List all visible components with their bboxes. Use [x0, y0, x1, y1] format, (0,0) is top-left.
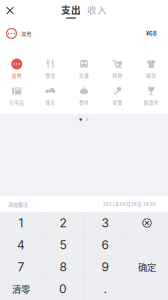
staticText: 支出 [61, 2, 81, 16]
staticText: 购物 [113, 72, 123, 79]
staticText: 餐饮 [45, 72, 55, 79]
button[interactable]: Close [0, 0, 20, 21]
button[interactable]: 其他 [0, 55, 34, 82]
staticText: 2 [59, 216, 66, 230]
button[interactable]: 交通 [67, 55, 101, 82]
staticText: 6 [101, 238, 108, 252]
button[interactable]: 7 [0, 256, 42, 278]
staticText: 服饰 [146, 72, 156, 79]
button[interactable]: 食材 [67, 82, 101, 109]
staticText: 5 [59, 238, 66, 252]
button[interactable]: Delete [126, 212, 168, 234]
staticText: 收入 [87, 2, 107, 16]
button[interactable]: 购物 [101, 55, 134, 82]
button[interactable]: 零食 [101, 82, 134, 109]
staticText: 清零 [12, 282, 30, 296]
button[interactable]: 2021年06月28日 14:30 [103, 196, 156, 211]
staticText: 零食 [113, 99, 123, 106]
button[interactable]: 日用品 [0, 82, 34, 109]
staticText: 烟酒茶 [144, 99, 159, 106]
staticText: 食材 [79, 99, 89, 106]
button[interactable]: 服饰 [134, 55, 168, 82]
staticText: 交通 [79, 72, 89, 79]
staticText: 其他 [21, 30, 31, 37]
button[interactable]: 清零 [0, 278, 42, 300]
button[interactable]: . [84, 278, 126, 300]
button[interactable]: 1 [0, 212, 42, 234]
staticText: 其他 [12, 72, 22, 79]
button[interactable]: 4 [0, 234, 42, 256]
button[interactable]: 0 [42, 278, 84, 300]
staticText: 9 [101, 260, 108, 274]
staticText: 0 [59, 282, 67, 296]
button[interactable]: 8 [42, 256, 84, 278]
button[interactable]: 确定 [126, 234, 168, 300]
button[interactable]: 娱乐 [34, 82, 67, 109]
button[interactable]: 9 [84, 256, 126, 278]
button[interactable]: 5 [42, 234, 84, 256]
button[interactable]: 餐饮 [34, 55, 67, 82]
button[interactable]: 收入 [84, 0, 110, 21]
button[interactable]: 支出 [58, 0, 84, 21]
button[interactable]: 3 [84, 212, 126, 234]
button[interactable]: 6 [84, 234, 126, 256]
staticText: 添加备注 [8, 200, 28, 208]
staticText: 娱乐 [45, 99, 55, 106]
button[interactable]: 添加备注 [8, 196, 28, 211]
staticText: 日用品 [9, 99, 24, 106]
staticText: 8 [59, 260, 66, 274]
staticText: 7 [17, 260, 24, 274]
staticText: 3 [101, 216, 108, 230]
staticText: 4 [17, 238, 25, 252]
staticText: 2021年06月28日 14:30 [103, 201, 156, 207]
staticText: . [103, 282, 106, 296]
staticText: ¥68 [146, 30, 157, 37]
staticText: 1 [18, 216, 23, 230]
button[interactable]: 烟酒茶 [134, 82, 168, 109]
staticText: 确定 [138, 260, 156, 274]
button[interactable]: 2 [42, 212, 84, 234]
